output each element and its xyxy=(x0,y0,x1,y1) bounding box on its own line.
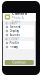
staticText: General xyxy=(9,25,20,29)
button[interactable]: Continue xyxy=(5,60,34,65)
button[interactable]: General xyxy=(4,25,34,29)
staticText: Display xyxy=(9,29,18,33)
staticText: SETTINGS xyxy=(5,21,16,25)
button[interactable]: Sounds xyxy=(4,33,34,37)
staticText: Profile xyxy=(9,41,19,45)
staticText: Sounds xyxy=(9,33,19,37)
button[interactable]: Display xyxy=(4,29,34,33)
staticText: Privacy xyxy=(9,45,17,49)
button[interactable]: Privacy xyxy=(4,45,34,49)
staticText: Photo & Video xyxy=(12,16,24,23)
button[interactable]: Profile xyxy=(4,41,34,45)
staticText: Camera xyxy=(12,11,27,16)
staticText: Continue xyxy=(12,61,26,64)
staticText: ACCOUNT xyxy=(5,37,18,41)
